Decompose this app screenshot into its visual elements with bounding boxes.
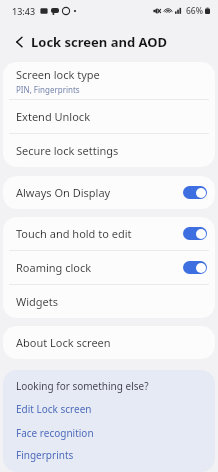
- staticText: PIN, Fingerprints: [16, 84, 80, 95]
- button[interactable]: Widgets: [3, 285, 215, 318]
- button[interactable]: Screen lock type: [3, 62, 215, 99]
- staticText: About Lock screen: [16, 335, 111, 350]
- button[interactable]: Extend Unlock: [3, 100, 215, 133]
- button[interactable]: Back: [10, 32, 30, 52]
- button[interactable]: Toggle on: [183, 227, 207, 240]
- staticText: Looking for something else?: [16, 379, 149, 393]
- staticText: Always On Display: [16, 185, 111, 200]
- button[interactable]: Toggle on: [183, 186, 207, 199]
- button[interactable]: Always On Display: [3, 176, 215, 209]
- button[interactable]: Toggle on: [183, 261, 207, 274]
- staticText: Face recognition: [16, 426, 94, 440]
- staticText: 13:43: [12, 5, 36, 17]
- staticText: Edit Lock screen: [16, 402, 92, 416]
- staticText: Lock screen and AOD: [31, 33, 168, 51]
- button[interactable]: Touch and hold to edit: [3, 217, 215, 250]
- staticText: Touch and hold to edit: [16, 226, 132, 241]
- button[interactable]: Fingerprints: [3, 445, 215, 464]
- staticText: Screen lock type: [16, 67, 100, 82]
- staticText: Fingerprints: [16, 448, 74, 462]
- button[interactable]: Edit Lock screen: [3, 397, 215, 421]
- button[interactable]: Roaming clock: [3, 251, 215, 284]
- staticText: Extend Unlock: [16, 109, 91, 124]
- button[interactable]: Face recognition: [3, 421, 215, 445]
- staticText: Roaming clock: [16, 260, 92, 275]
- button[interactable]: About Lock screen: [3, 326, 215, 359]
- button[interactable]: Secure lock settings: [3, 134, 215, 167]
- staticText: Secure lock settings: [16, 143, 119, 158]
- staticText: Widgets: [16, 294, 59, 309]
- staticText: 66%: [186, 5, 203, 17]
